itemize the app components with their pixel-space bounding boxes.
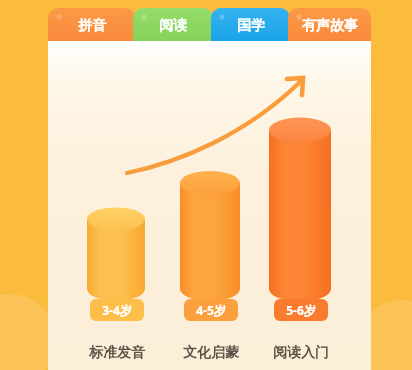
staticText: 标准发音 [89,344,145,362]
staticText: 拼音 [78,17,106,35]
button[interactable]: 标准发音 [82,344,152,362]
button[interactable]: 文化启蒙 [176,344,246,362]
staticText: 5-6岁 [286,302,316,318]
staticText: 有声故事 [302,17,358,35]
button[interactable]: 4-5岁 [184,299,238,321]
button[interactable]: 3-4岁 [90,299,144,321]
staticText: 阅读 [159,17,187,35]
button[interactable]: 国学 [211,8,290,44]
button[interactable]: 拼音 [48,8,135,44]
button[interactable]: 5-6岁 [274,299,328,321]
staticText: 阅读入门 [273,344,329,362]
button[interactable]: 有声故事 [288,8,371,44]
staticText: 国学 [237,17,265,35]
staticText: 3-4岁 [102,302,132,318]
staticText: 文化启蒙 [183,344,239,362]
button[interactable]: 阅读入门 [266,344,336,362]
staticText: 4-5岁 [196,302,226,318]
button[interactable]: 阅读 [133,8,213,44]
